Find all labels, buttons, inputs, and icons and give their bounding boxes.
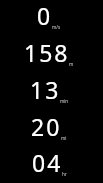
button[interactable]: 0: [0, 0, 99, 34]
button[interactable]: 13: [0, 71, 99, 108]
staticText: m/s: [52, 24, 61, 30]
staticText: 158: [24, 37, 70, 68]
staticText: 13: [30, 74, 61, 105]
staticText: min: [60, 98, 69, 104]
staticText: 20: [31, 111, 62, 142]
button[interactable]: 20: [0, 108, 99, 145]
staticText: m: [69, 61, 74, 67]
button[interactable]: 04: [0, 145, 99, 180]
staticText: 0: [37, 0, 53, 31]
staticText: hr: [62, 171, 67, 177]
staticText: 04: [32, 147, 63, 178]
staticText: mi: [61, 135, 67, 141]
button[interactable]: 158: [0, 34, 99, 71]
